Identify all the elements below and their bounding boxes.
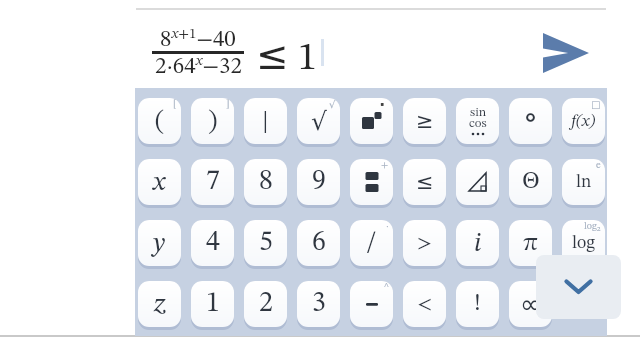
button[interactable]: y xyxy=(138,220,181,269)
button[interactable]: ≥ xyxy=(403,98,446,147)
button[interactable]: log xyxy=(562,220,605,269)
staticText: ln xyxy=(576,173,592,191)
button[interactable]: 4 xyxy=(191,220,234,269)
staticText: log xyxy=(572,234,596,252)
staticText: i xyxy=(474,230,482,257)
button[interactable]: < xyxy=(403,281,446,330)
staticText: 6 xyxy=(312,229,326,257)
staticText: x xyxy=(153,169,166,196)
button[interactable]: √ xyxy=(297,98,340,147)
button[interactable]: ∞ xyxy=(509,281,552,330)
button[interactable] xyxy=(543,33,589,73)
staticText: π xyxy=(523,231,538,256)
staticText: z xyxy=(154,291,166,318)
button[interactable]: i xyxy=(456,220,499,269)
button[interactable]: ▪ xyxy=(350,98,393,147)
staticText: f(x) xyxy=(571,113,596,130)
button[interactable]: ! xyxy=(456,281,499,330)
staticText: y xyxy=(153,230,166,257)
staticText: + xyxy=(381,160,389,170)
button[interactable] xyxy=(456,159,499,208)
staticText: [ xyxy=(173,99,177,109)
button[interactable]: Θ xyxy=(509,159,552,208)
staticText: sin xyxy=(470,106,487,119)
staticText: √ xyxy=(311,107,327,136)
button[interactable]: ) xyxy=(191,98,234,147)
button[interactable]: + xyxy=(350,159,393,208)
staticText: ! xyxy=(474,292,481,316)
staticText: | xyxy=(262,109,269,134)
button[interactable]: f(x) xyxy=(562,98,605,147)
button[interactable] xyxy=(509,98,552,147)
staticText: ^ xyxy=(384,282,389,292)
staticText: 3 xyxy=(312,290,326,318)
staticText: e xyxy=(596,160,601,170)
button[interactable]: ^ xyxy=(350,281,393,330)
staticText: ≤ xyxy=(416,170,434,194)
button[interactable]: / xyxy=(350,220,393,269)
button[interactable]: 6 xyxy=(297,220,340,269)
staticText: 7 xyxy=(206,168,220,196)
staticText: > xyxy=(417,233,432,254)
staticText: √ xyxy=(329,99,336,111)
button[interactable]: 9 xyxy=(297,159,340,208)
button[interactable]: x xyxy=(138,159,181,208)
button[interactable]: ≤ xyxy=(403,159,446,208)
staticText: ) xyxy=(208,108,218,135)
button[interactable]: 2 xyxy=(244,281,287,330)
button[interactable]: ( xyxy=(138,98,181,147)
staticText: 9 xyxy=(312,168,326,196)
staticText: Θ xyxy=(522,170,540,194)
staticText: 2 xyxy=(259,290,273,318)
staticText: 8x+1−40 xyxy=(160,27,236,51)
staticText: ≤ 1 xyxy=(256,33,318,78)
staticText: cos xyxy=(469,117,487,130)
staticText: 4 xyxy=(206,229,220,257)
staticText: log₂ xyxy=(584,221,601,231)
button[interactable]: 3 xyxy=(297,281,340,330)
button[interactable] xyxy=(536,255,621,319)
button[interactable]: 8 xyxy=(244,159,287,208)
button[interactable]: π xyxy=(509,220,552,269)
staticText: ] xyxy=(226,99,230,109)
button[interactable]: | xyxy=(244,98,287,147)
button[interactable]: sin xyxy=(456,98,499,147)
button[interactable]: ln xyxy=(562,159,605,208)
button[interactable]: 1 xyxy=(191,281,234,330)
staticText: □ xyxy=(591,99,601,111)
button[interactable]: 5 xyxy=(244,220,287,269)
staticText: 1 xyxy=(206,290,220,318)
staticText: ( xyxy=(155,108,165,135)
staticText: · xyxy=(386,221,389,231)
button[interactable]: z xyxy=(138,281,181,330)
staticText: < xyxy=(417,294,432,315)
staticText: ∞ xyxy=(520,289,542,319)
staticText: ▪ xyxy=(376,99,389,111)
button[interactable]: 7 xyxy=(191,159,234,208)
staticText: / xyxy=(366,230,377,257)
staticText: 5 xyxy=(259,229,273,257)
button[interactable]: > xyxy=(403,220,446,269)
staticText: 2·64x−32 xyxy=(155,54,242,78)
staticText: ≥ xyxy=(416,109,434,133)
staticText: 8 xyxy=(259,168,273,196)
